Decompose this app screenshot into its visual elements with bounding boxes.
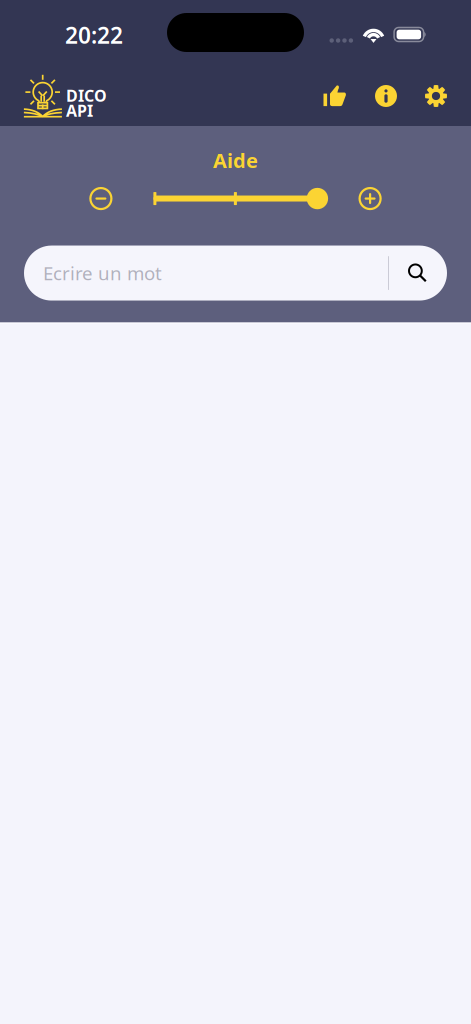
button[interactable]: Like — [314, 74, 358, 118]
button[interactable]: Search — [389, 246, 447, 301]
button[interactable]: Information — [364, 74, 408, 118]
button[interactable]: Ecrire un mot — [24, 246, 388, 301]
button[interactable]: Increase help level — [357, 186, 383, 212]
button[interactable]: DICO — [0, 69, 115, 119]
button[interactable]: Decrease help level — [88, 186, 114, 212]
staticText: 20:22 — [65, 20, 123, 50]
staticText: Ecrire un mot — [43, 261, 162, 285]
button[interactable]: Settings — [414, 74, 458, 118]
staticText: Aide — [213, 147, 258, 174]
staticText: API — [66, 100, 93, 121]
staticText: DICO — [66, 85, 107, 106]
